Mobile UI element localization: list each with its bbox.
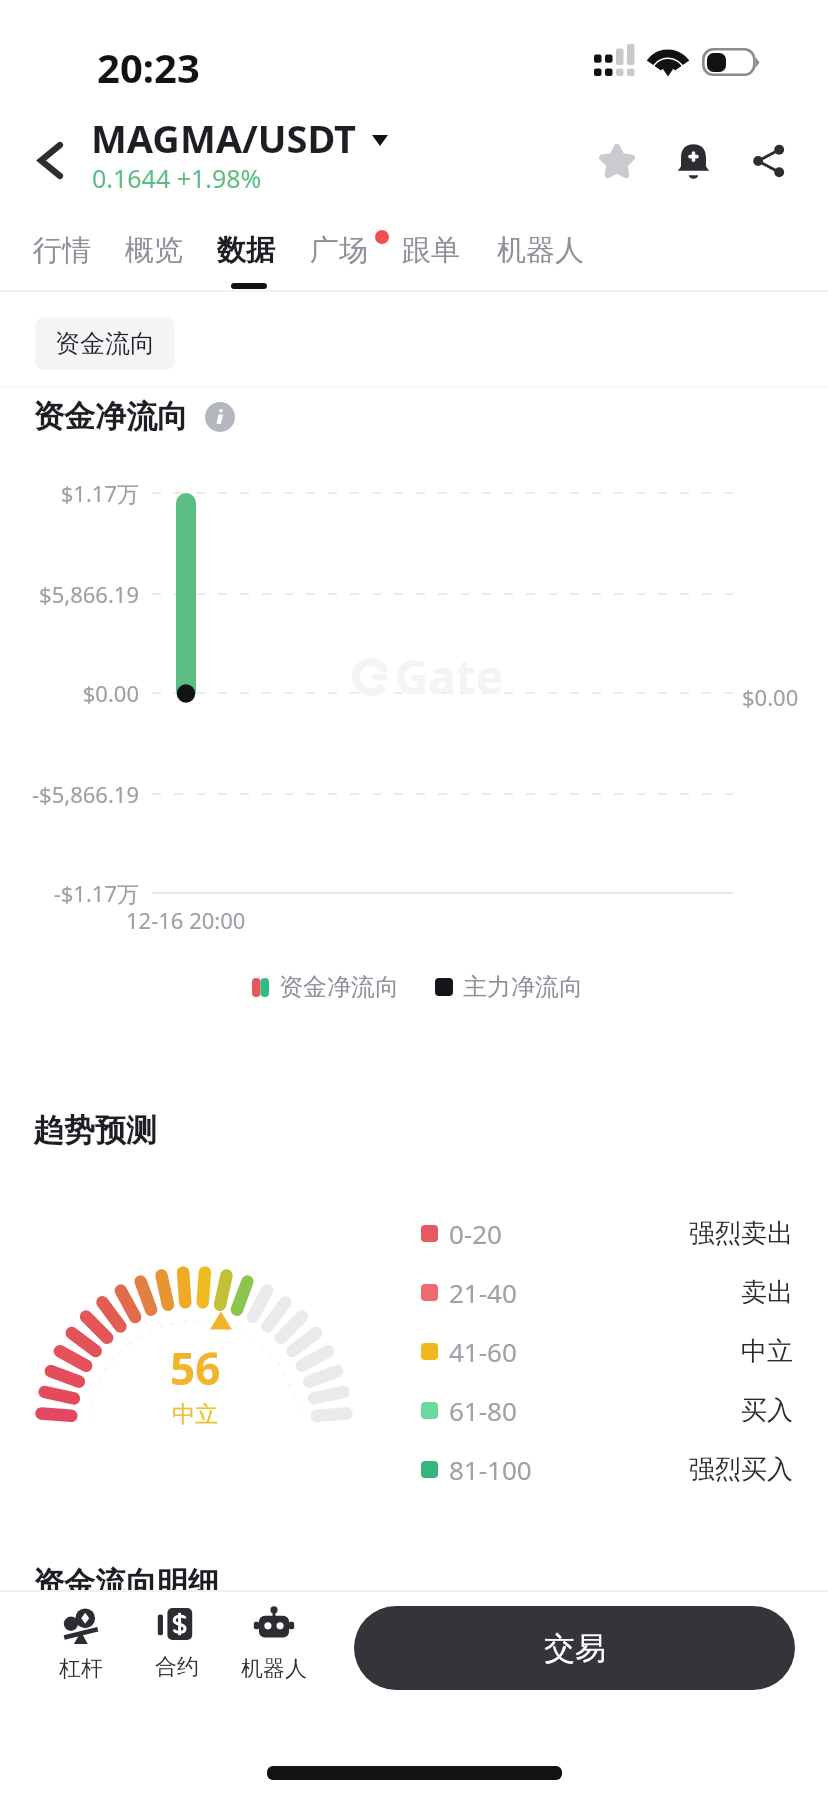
staticText: 机器人 bbox=[241, 1655, 307, 1683]
button[interactable]: 0-20 bbox=[421, 1212, 793, 1254]
staticText: 跟单 bbox=[402, 232, 460, 269]
staticText: 中立 bbox=[172, 1400, 218, 1429]
button[interactable]: Price alert bbox=[655, 123, 731, 199]
staticText: Gate bbox=[395, 645, 504, 708]
staticText: 资金流向 bbox=[55, 328, 155, 359]
staticText: 21-40 bbox=[449, 1275, 517, 1310]
staticText: 合约 bbox=[155, 1653, 199, 1681]
staticText: 数据 bbox=[217, 232, 275, 269]
staticText: 强烈买入 bbox=[689, 1453, 793, 1486]
staticText: 行情 bbox=[33, 232, 91, 269]
staticText: 61-80 bbox=[449, 1393, 517, 1428]
staticText: 20:23 bbox=[97, 40, 200, 94]
staticText: 广场 bbox=[310, 232, 368, 269]
staticText: $1.17万 bbox=[0, 478, 139, 508]
staticText: 买入 bbox=[741, 1394, 793, 1427]
staticText: 概览 bbox=[125, 232, 183, 269]
staticText: 机器人 bbox=[497, 232, 584, 269]
button[interactable]: 61-80 bbox=[421, 1389, 793, 1431]
staticText: $0.00 bbox=[742, 682, 799, 712]
staticText: 0.1644 +1.98% bbox=[92, 161, 262, 195]
button[interactable]: 概览 bbox=[107, 222, 201, 279]
staticText: MAGMA/USDT bbox=[91, 112, 357, 164]
staticText: 41-60 bbox=[449, 1334, 517, 1369]
button[interactable]: 21-40 bbox=[421, 1271, 793, 1313]
staticText: 12-16 20:00 bbox=[126, 905, 246, 935]
staticText: 资金净流向 bbox=[33, 397, 188, 436]
staticText: 交易 bbox=[544, 1629, 606, 1668]
staticText: 强烈卖出 bbox=[689, 1217, 793, 1250]
button[interactable]: Favorite bbox=[579, 123, 655, 199]
staticText: 杠杆 bbox=[59, 1655, 103, 1683]
button[interactable]: 杠杆 bbox=[33, 1604, 129, 1683]
button[interactable]: 机器人 bbox=[226, 1604, 322, 1683]
staticText: -$5,866.19 bbox=[0, 779, 139, 809]
button[interactable]: 数据 bbox=[199, 222, 293, 279]
staticText: $0.00 bbox=[0, 678, 139, 708]
staticText: 趋势预测 bbox=[33, 1111, 157, 1150]
staticText: 0-20 bbox=[449, 1216, 502, 1251]
button[interactable]: Back bbox=[21, 131, 79, 189]
button[interactable]: Share bbox=[731, 123, 807, 199]
staticText: 56 bbox=[170, 1338, 221, 1398]
staticText: 主力净流向 bbox=[463, 972, 583, 1002]
button[interactable]: 机器人 bbox=[479, 222, 602, 279]
staticText: -$1.17万 bbox=[0, 878, 139, 908]
button[interactable]: 81-100 bbox=[421, 1448, 793, 1490]
button[interactable]: 41-60 bbox=[421, 1330, 793, 1372]
button[interactable]: 交易 bbox=[354, 1606, 795, 1690]
staticText: $5,866.19 bbox=[0, 579, 139, 609]
staticText: 卖出 bbox=[741, 1276, 793, 1309]
staticText: 资金净流向 bbox=[279, 972, 399, 1002]
button[interactable]: 行情 bbox=[15, 222, 109, 279]
button[interactable]: 资金流向 bbox=[35, 317, 175, 370]
button[interactable]: 合约 bbox=[129, 1604, 225, 1681]
staticText: 资金流向明细 bbox=[33, 1564, 219, 1603]
button[interactable]: 跟单 bbox=[384, 222, 478, 279]
staticText: 中立 bbox=[741, 1335, 793, 1368]
staticText: 81-100 bbox=[449, 1452, 532, 1487]
button[interactable]: 广场 bbox=[292, 222, 386, 279]
